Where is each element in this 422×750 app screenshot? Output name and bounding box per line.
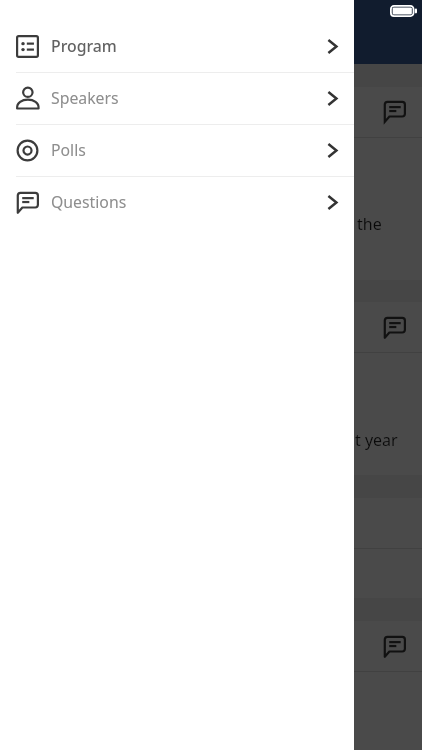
staticText: the [357,213,382,235]
staticText: t year [355,429,398,451]
staticText: Questions [51,191,127,213]
button[interactable]: Questions [0,176,354,228]
staticText: Program [51,35,117,57]
staticText: Speakers [51,87,119,109]
button[interactable]: Speakers [0,72,354,124]
button[interactable]: Program [0,20,354,72]
button[interactable]: Polls [0,124,354,176]
staticText: Polls [51,139,86,161]
